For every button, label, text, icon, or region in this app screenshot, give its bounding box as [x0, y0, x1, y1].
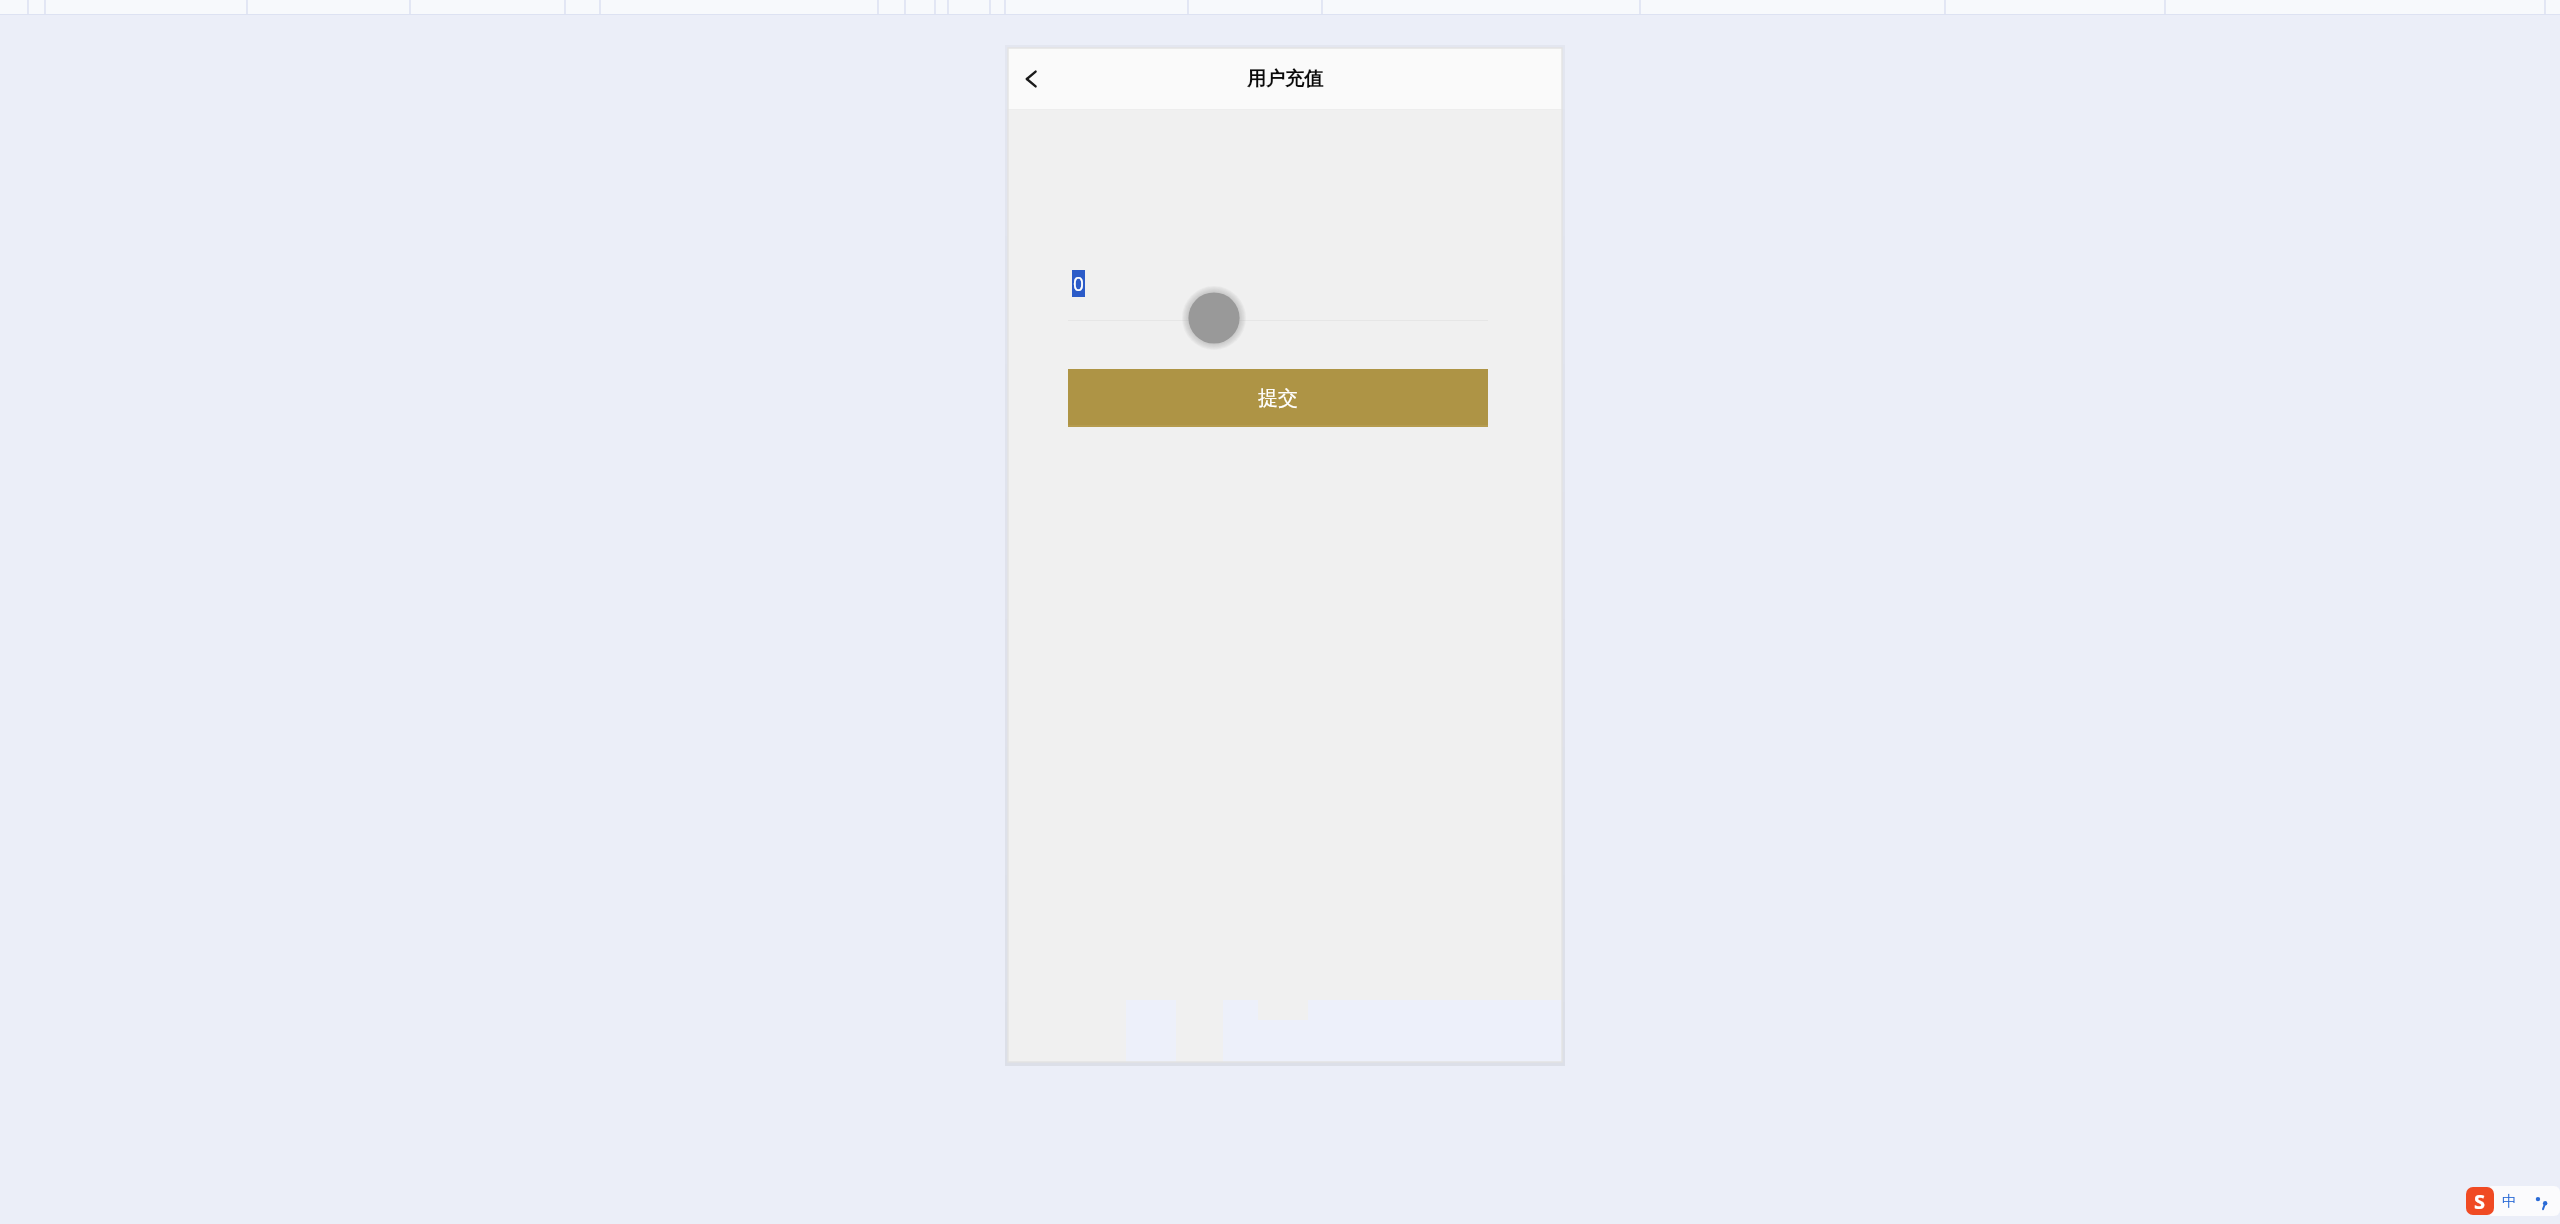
staticText: S: [2474, 1188, 2486, 1215]
button[interactable]: 输入法状态: [2464, 1184, 2560, 1218]
staticText: 0: [1073, 271, 1084, 297]
button[interactable]: 提交: [1068, 369, 1488, 427]
staticText: 中: [2502, 1192, 2517, 1211]
button[interactable]: 0: [1068, 250, 1488, 322]
staticText: 用户充值: [1247, 67, 1323, 91]
other: 加载中: [1182, 286, 1246, 350]
staticText: 提交: [1258, 386, 1298, 411]
button[interactable]: 返回: [1011, 53, 1055, 105]
